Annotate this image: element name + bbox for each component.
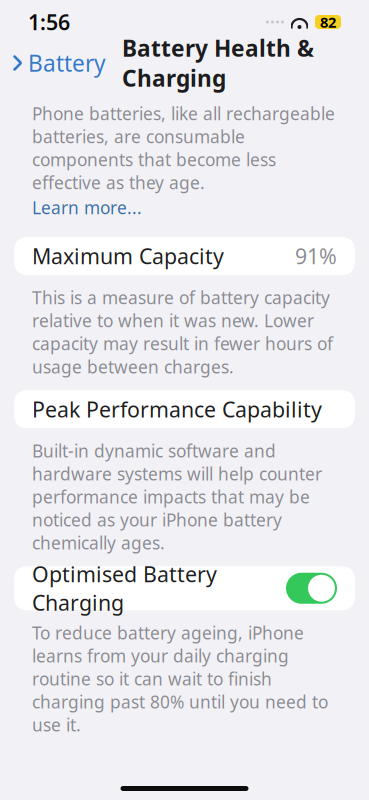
button[interactable]: Battery (8, 41, 110, 85)
staticText: Peak Performance Capability (32, 395, 322, 423)
staticText: Built-in dynamic software and hardware s… (32, 439, 322, 554)
staticText: Learn more... (32, 196, 142, 219)
staticText: 91% (295, 242, 337, 270)
staticText: 82 (320, 12, 336, 32)
button[interactable]: Peak Performance Capability (14, 390, 355, 428)
staticText: Maximum Capacity (32, 242, 224, 270)
staticText: Optimised Battery Charging (32, 560, 217, 617)
staticText: This is a measure of battery capacity re… (32, 286, 333, 378)
button[interactable]: Optimised Battery Charging (14, 566, 355, 610)
staticText: Phone batteries, like all rechargeable b… (32, 102, 335, 194)
staticText: To reduce battery ageing, iPhone learns … (32, 621, 328, 736)
button[interactable]: Maximum Capacity (14, 237, 355, 275)
button[interactable]: Learn more... (32, 196, 142, 219)
staticText: 1:56 (28, 8, 70, 36)
staticText: Battery (28, 48, 106, 78)
staticText: Battery Health & Charging (122, 33, 314, 93)
